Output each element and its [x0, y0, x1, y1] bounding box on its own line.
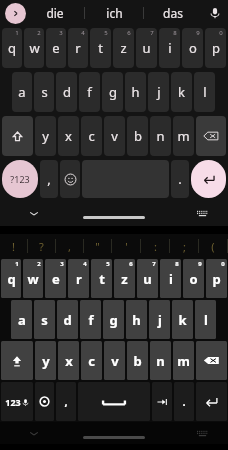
button[interactable]: s: [34, 72, 54, 112]
button[interactable]: i: [159, 28, 180, 68]
button[interactable]: c: [81, 341, 102, 380]
button[interactable]: Expand suggestions: [5, 3, 26, 24]
button[interactable]: Shift: [1, 341, 33, 380]
button[interactable]: Backspace: [196, 116, 226, 156]
button[interactable]: u: [136, 28, 157, 68]
button[interactable]: d: [57, 300, 78, 339]
button[interactable]: v: [104, 341, 125, 380]
button[interactable]: y: [35, 116, 56, 156]
button[interactable]: p: [206, 259, 227, 298]
button[interactable]: ,: [56, 382, 76, 421]
button[interactable]: r: [68, 259, 89, 298]
button[interactable]: p: [205, 28, 226, 68]
staticText: j: [158, 311, 162, 329]
button[interactable]: ,: [56, 234, 83, 258]
button[interactable]: l: [195, 300, 216, 339]
button[interactable]: o: [183, 259, 204, 298]
staticText: z: [120, 39, 127, 57]
button[interactable]: z: [113, 28, 134, 68]
button[interactable]: !: [0, 234, 27, 258]
button[interactable]: j: [149, 300, 170, 339]
button[interactable]: j: [148, 72, 169, 112]
button[interactable]: h: [126, 300, 147, 339]
button[interactable]: d: [56, 72, 77, 112]
button[interactable]: Hide keyboard: [24, 203, 44, 223]
button[interactable]: g: [102, 72, 123, 112]
button[interactable]: t: [90, 28, 111, 68]
button[interactable]: c: [81, 116, 102, 156]
button[interactable]: v: [104, 116, 125, 156]
button[interactable]: Shift: [2, 116, 33, 156]
button[interactable]: y: [35, 341, 56, 380]
button[interactable]: die: [26, 0, 84, 26]
button[interactable]: w: [24, 28, 44, 68]
staticText: ': [125, 239, 128, 254]
button[interactable]: u: [137, 259, 158, 298]
button[interactable]: Enter: [191, 160, 226, 198]
button[interactable]: ": [84, 234, 111, 258]
button[interactable]: Space: [78, 382, 150, 421]
button[interactable]: Enter: [196, 382, 227, 421]
button[interactable]: ?: [28, 234, 55, 258]
staticText: :: [154, 239, 157, 254]
staticText: 9: [198, 260, 202, 268]
button[interactable]: Tab: [152, 382, 172, 421]
button[interactable]: das: [144, 0, 202, 26]
button[interactable]: m: [173, 116, 194, 156]
staticText: o: [189, 39, 197, 57]
button[interactable]: ': [112, 234, 140, 258]
button[interactable]: ich: [85, 0, 143, 26]
button[interactable]: Emoji: [60, 160, 80, 198]
button[interactable]: Switch keyboard: [192, 203, 212, 223]
button[interactable]: Backspace: [196, 341, 227, 380]
button[interactable]: k: [171, 72, 192, 112]
button[interactable]: b: [127, 341, 148, 380]
button[interactable]: i: [160, 259, 181, 298]
button[interactable]: ,: [40, 160, 58, 198]
button[interactable]: m: [173, 341, 194, 380]
button[interactable]: a: [11, 300, 32, 339]
button[interactable]: Switch keyboard: [192, 423, 212, 443]
button[interactable]: x: [58, 116, 79, 156]
button[interactable]: s: [34, 300, 55, 339]
button[interactable]: Voice input: [202, 0, 228, 26]
button[interactable]: e: [45, 259, 66, 298]
button[interactable]: a: [12, 72, 32, 112]
button[interactable]: g: [103, 300, 124, 339]
button[interactable]: f: [80, 300, 101, 339]
button[interactable]: Settings: [35, 382, 54, 421]
staticText: 0: [221, 260, 225, 268]
button[interactable]: x: [58, 341, 79, 380]
staticText: u: [142, 39, 151, 57]
button[interactable]: Hide keyboard: [24, 423, 44, 443]
staticText: 2: [37, 260, 41, 268]
button[interactable]: ?123: [2, 160, 38, 198]
button[interactable]: .: [171, 160, 189, 198]
button[interactable]: z: [114, 259, 135, 298]
button[interactable]: q: [2, 28, 22, 68]
button[interactable]: l: [194, 72, 215, 112]
button[interactable]: r: [68, 28, 88, 68]
staticText: s: [41, 83, 48, 101]
button[interactable]: (: [199, 234, 227, 258]
button[interactable]: :: [141, 234, 169, 258]
button[interactable]: b: [127, 116, 148, 156]
button[interactable]: Numbers and voice: [1, 382, 33, 421]
button[interactable]: .: [174, 382, 194, 421]
staticText: f: [88, 311, 94, 329]
staticText: ": [95, 239, 100, 254]
button[interactable]: ;: [170, 234, 198, 258]
button[interactable]: t: [91, 259, 112, 298]
staticText: m: [177, 352, 190, 370]
staticText: c: [88, 127, 95, 145]
button[interactable]: k: [172, 300, 193, 339]
button[interactable]: n: [150, 116, 171, 156]
button[interactable]: h: [125, 72, 146, 112]
button[interactable]: e: [46, 28, 66, 68]
button[interactable]: o: [182, 28, 203, 68]
button[interactable]: f: [79, 72, 100, 112]
button[interactable]: w: [23, 259, 43, 298]
button[interactable]: n: [150, 341, 171, 380]
button[interactable]: q: [1, 259, 21, 298]
